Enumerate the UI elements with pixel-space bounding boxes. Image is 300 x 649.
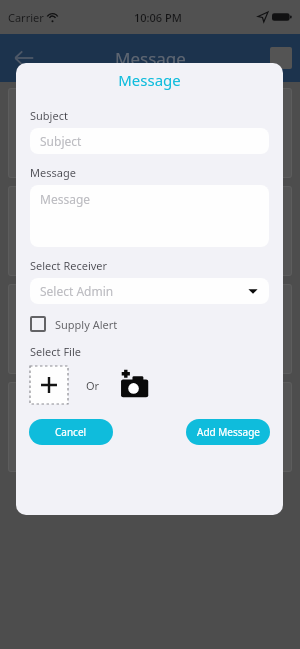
staticText: Subject	[40, 133, 82, 149]
staticText: New iOS supply alert	[18, 212, 135, 228]
staticText: 05/29/2020	[38, 253, 102, 269]
button[interactable]: Cancel	[29, 419, 113, 445]
staticText: Carrier	[8, 10, 44, 25]
staticText: Select File	[30, 344, 81, 359]
button[interactable]: Add	[270, 47, 292, 69]
staticText: Subject	[18, 291, 56, 306]
staticText: Admin-Ericka	[68, 428, 143, 444]
staticText: Message	[40, 191, 91, 207]
staticText: Receiver	[18, 429, 62, 444]
staticText: New iOS supply alert	[18, 114, 135, 130]
staticText: Supply Alert	[55, 317, 118, 332]
staticText: Subject	[30, 108, 68, 123]
button[interactable]: Subject	[8, 382, 292, 472]
staticText: Or	[86, 378, 100, 393]
staticText: Message	[30, 165, 76, 180]
button[interactable]: Back	[6, 40, 42, 76]
staticText: 05/29/2020	[38, 155, 102, 171]
staticText: Receiver	[18, 135, 62, 150]
staticText: Message Id: 66	[204, 291, 282, 306]
button[interactable]: Select file	[30, 366, 68, 404]
button[interactable]: Take photo	[116, 365, 156, 405]
button[interactable]: Subject	[8, 186, 292, 276]
staticText: New iOS supply alert	[18, 408, 135, 424]
staticText: Message	[115, 47, 186, 70]
button[interactable]: Subject	[30, 128, 269, 154]
staticText: Message	[16, 70, 283, 90]
staticText: Message Id: 66	[204, 193, 282, 208]
staticText: 10:06 PM	[134, 10, 182, 25]
button[interactable]: Select Admin	[30, 278, 269, 304]
staticText: Receiver	[18, 331, 62, 346]
staticText: Select Admin	[40, 283, 114, 299]
button[interactable]: Subject	[8, 284, 292, 374]
button[interactable]: Subject	[8, 88, 292, 178]
staticText: New iOS supply alert	[18, 310, 135, 326]
staticText: Select Receiver	[30, 258, 108, 273]
staticText: 05/29/2020	[38, 351, 102, 367]
staticText: Add Message	[197, 425, 260, 439]
staticText: Subject	[18, 389, 56, 404]
button[interactable]: Supply Alert	[30, 316, 118, 332]
staticText: Subject	[18, 193, 56, 208]
button[interactable]: Add Message	[186, 419, 270, 445]
staticText: Admin-Ericka	[68, 330, 143, 346]
staticText: Admin-Ericka	[68, 134, 143, 150]
button[interactable]: Message	[30, 185, 269, 247]
staticText: Receiver	[18, 233, 62, 248]
staticText: Cancel	[55, 425, 87, 439]
